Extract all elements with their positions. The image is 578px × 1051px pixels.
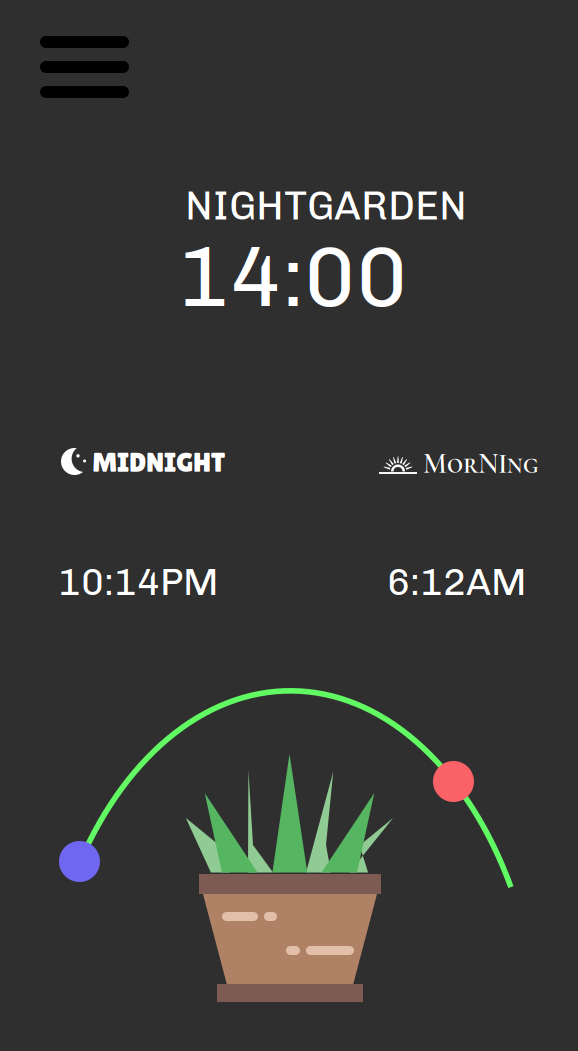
staticText: 10:14PM — [58, 560, 219, 604]
staticText: 6:12AM — [387, 560, 527, 604]
button[interactable]: Menu — [0, 0, 129, 98]
staticText: 14:00 — [178, 227, 408, 327]
staticText: MorNIng — [423, 447, 538, 481]
staticText: MIDNIGHT — [92, 446, 225, 478]
staticText: NIGHTGARDEN — [185, 182, 467, 230]
